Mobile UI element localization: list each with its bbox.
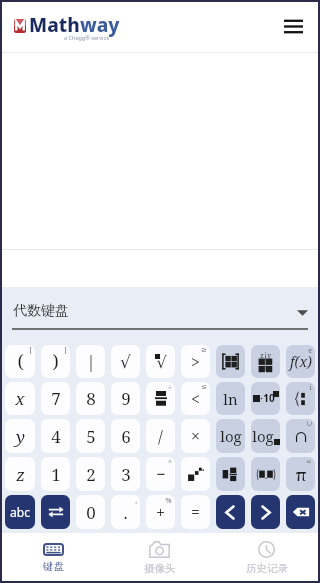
staticText: 10 — [263, 391, 275, 405]
staticText: ln — [223, 389, 238, 409]
staticText: . — [123, 501, 128, 524]
button[interactable]: Power — [181, 457, 210, 491]
button[interactable]: √ — [111, 345, 140, 378]
staticText: √ — [156, 353, 167, 371]
button[interactable]: z — [5, 457, 35, 491]
button[interactable]: x — [5, 382, 35, 415]
staticText: / — [158, 425, 163, 448]
button[interactable]: ( — [5, 345, 35, 378]
staticText: − — [156, 463, 166, 485]
staticText: ∞ — [306, 458, 312, 466]
staticText: 8 — [86, 387, 96, 410]
staticText: log — [220, 426, 242, 446]
button[interactable]: Matrix variables — [251, 345, 280, 378]
staticText: ∪ — [306, 420, 312, 428]
staticText: ≥ — [201, 346, 207, 354]
button[interactable]: Move left — [216, 495, 245, 529]
staticText: 2 — [86, 463, 96, 486]
button[interactable]: ∩ — [286, 419, 315, 453]
staticText: e — [308, 346, 312, 356]
button[interactable]: 键盘 — [0, 533, 106, 583]
staticText: 历史记录 — [246, 562, 288, 575]
button[interactable]: Matrix — [216, 345, 245, 378]
button[interactable]: log — [216, 419, 245, 453]
staticText: + — [156, 501, 165, 523]
staticText: 键盘 — [43, 560, 64, 573]
button[interactable]: abc — [5, 495, 35, 529]
staticText: z — [16, 463, 25, 486]
button[interactable]: + — [146, 495, 175, 529]
staticText: ( — [17, 349, 24, 374]
button[interactable]: 7 — [41, 382, 70, 415]
button[interactable]: 历史记录 — [213, 533, 320, 583]
staticText: f(x) — [290, 352, 312, 371]
button[interactable]: 4 — [41, 419, 70, 453]
button[interactable]: × — [181, 419, 210, 453]
button[interactable]: | — [76, 345, 105, 378]
staticText: i — [309, 383, 312, 393]
staticText: ) — [52, 349, 59, 374]
staticText: 5 — [86, 425, 96, 448]
staticText: ≤ — [201, 383, 207, 391]
button[interactable]: Swap — [41, 495, 70, 529]
button[interactable]: = — [181, 495, 210, 529]
button[interactable]: 2 — [76, 457, 105, 491]
button[interactable]: 1 — [41, 457, 70, 491]
button[interactable]: − — [146, 457, 175, 491]
staticText: 4 — [51, 425, 61, 448]
staticText: [ — [29, 346, 32, 356]
button[interactable]: y — [5, 419, 35, 453]
staticText: z|y — [260, 351, 271, 360]
button[interactable]: Menu — [276, 9, 310, 43]
button[interactable]: f(x) — [286, 345, 315, 378]
staticText: 1 — [51, 463, 61, 486]
staticText: % — [165, 496, 172, 506]
staticText: log — [252, 426, 274, 446]
button[interactable]: 代数键盘 — [0, 287, 320, 343]
button[interactable]: 6 — [111, 419, 140, 453]
button[interactable]: π — [286, 457, 315, 491]
staticText: 摄像头 — [144, 562, 176, 575]
button[interactable]: < — [181, 382, 210, 415]
button[interactable]: 8 — [76, 382, 105, 415]
staticText: y — [16, 425, 25, 448]
button[interactable]: > — [181, 345, 210, 378]
button[interactable]: ) — [41, 345, 70, 378]
staticText: ] — [64, 346, 67, 356]
button[interactable]: 摄像头 — [106, 533, 213, 583]
staticText: < — [191, 388, 200, 410]
button[interactable]: ln — [216, 382, 245, 415]
staticText: = — [191, 501, 200, 523]
button[interactable]: log base — [251, 419, 280, 453]
staticText: 6 — [121, 425, 131, 448]
button[interactable]: 0 — [76, 495, 105, 529]
staticText: 代数键盘 — [13, 302, 69, 320]
staticText: | — [86, 350, 96, 373]
button[interactable]: / — [146, 419, 175, 453]
staticText: ^ — [168, 458, 172, 468]
staticText: 7 — [51, 387, 61, 410]
button[interactable]: Piecewise — [286, 382, 315, 415]
button[interactable]: Fraction — [146, 382, 175, 415]
staticText: Math — [29, 12, 80, 38]
staticText: 3 — [121, 463, 131, 486]
button[interactable]: 3 — [111, 457, 140, 491]
button[interactable]: nth root — [146, 345, 175, 378]
staticText: , — [135, 496, 137, 506]
staticText: × — [191, 425, 200, 447]
button[interactable]: 9 — [111, 382, 140, 415]
staticText: > — [191, 351, 200, 373]
staticText: ÷ — [168, 383, 172, 393]
staticText: abc — [10, 504, 30, 520]
button[interactable]: Backspace — [286, 495, 315, 529]
staticText: way — [80, 12, 120, 38]
button[interactable]: Vector — [251, 457, 280, 491]
staticText: √ — [120, 352, 131, 372]
button[interactable]: Move right — [251, 495, 280, 529]
staticText: 0 — [86, 501, 96, 524]
button[interactable]: Mixed number — [216, 457, 245, 491]
staticText: 9 — [121, 387, 131, 410]
button[interactable]: Scientific notation — [251, 382, 280, 415]
button[interactable]: . — [111, 495, 140, 529]
button[interactable]: 5 — [76, 419, 105, 453]
